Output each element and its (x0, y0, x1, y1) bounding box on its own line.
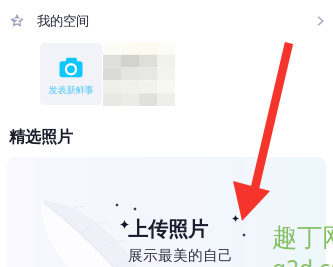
staticText: 展示最美的自己 (128, 247, 233, 265)
button[interactable]: 发表新鲜事 (40, 43, 102, 105)
staticText: 上传照片 (128, 217, 208, 242)
staticText: q2d.com (272, 253, 333, 267)
staticText: 我的空间 (37, 13, 89, 29)
staticText: 发表新鲜事 (48, 84, 93, 96)
staticText: 精选照片 (9, 127, 73, 147)
staticText: 趣丁网 (272, 222, 333, 253)
button[interactable]: 上传照片 (7, 157, 326, 267)
button[interactable]: 我的空间 (0, 0, 333, 42)
